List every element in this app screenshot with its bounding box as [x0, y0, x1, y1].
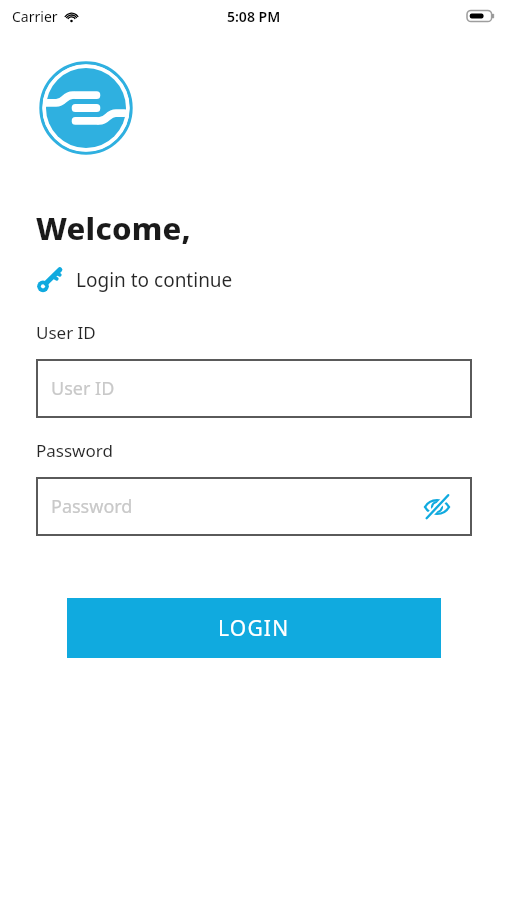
- button[interactable]: User ID: [36, 359, 472, 418]
- button[interactable]: LOGIN: [67, 598, 441, 658]
- staticText: User ID: [36, 321, 96, 344]
- staticText: Carrier: [12, 7, 58, 26]
- staticText: 5:08 PM: [227, 7, 281, 26]
- staticText: User ID: [51, 376, 115, 401]
- staticText: Password: [51, 494, 133, 519]
- button[interactable]: Password: [36, 477, 472, 536]
- button[interactable]: Show password: [422, 492, 452, 522]
- staticText: Password: [36, 439, 113, 462]
- staticText: LOGIN: [218, 614, 290, 643]
- staticText: Login to continue: [76, 267, 233, 293]
- staticText: Welcome,: [36, 207, 191, 249]
